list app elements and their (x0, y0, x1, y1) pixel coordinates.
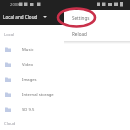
button[interactable]: Reload (64, 26, 130, 41)
button[interactable]: Images (0, 72, 130, 87)
staticText: Images (22, 77, 37, 83)
staticText: Cloud (4, 121, 130, 127)
button[interactable]: Music (0, 42, 130, 57)
button[interactable]: Internal storage (0, 87, 130, 102)
button[interactable]: Local and Cloud (3, 14, 47, 20)
button[interactable]: Settings (64, 10, 130, 26)
staticText: Local and Cloud (3, 14, 38, 20)
staticText: SD 9.5 (22, 107, 35, 113)
button[interactable]: Video (0, 57, 130, 72)
staticText: Music (22, 47, 34, 53)
staticText: Settings (72, 15, 90, 21)
button[interactable]: SD 9.5 (0, 102, 130, 117)
staticText: Reload (72, 31, 87, 37)
staticText: Video (22, 62, 34, 68)
staticText: Local (4, 32, 130, 38)
staticText: 2008 (10, 2, 20, 8)
staticText: Internal storage (22, 92, 54, 98)
